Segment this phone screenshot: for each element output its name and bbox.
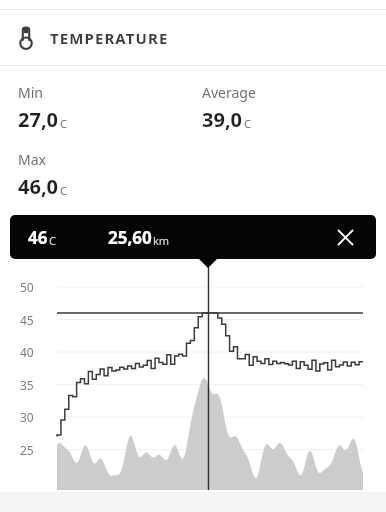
button[interactable]: Close <box>332 224 358 250</box>
staticText: 39,0 <box>202 106 243 133</box>
staticText: km <box>153 233 170 248</box>
button[interactable]: TEMPERATURE <box>0 10 386 65</box>
staticText: 25,60 <box>108 226 152 249</box>
staticText: Max <box>18 150 46 169</box>
staticText: 35 <box>20 377 34 393</box>
staticText: Average <box>202 83 256 102</box>
staticText: 50 <box>20 279 34 295</box>
staticText: 27,0 <box>18 106 59 133</box>
button[interactable]: Max <box>18 150 202 200</box>
staticText: 40 <box>20 344 34 360</box>
staticText: 25 <box>20 442 34 458</box>
button[interactable]: 46 <box>10 215 376 259</box>
staticText: 46 <box>28 226 48 249</box>
staticText: C <box>60 183 67 198</box>
button[interactable]: Min <box>18 83 202 133</box>
staticText: Min <box>18 83 43 102</box>
staticText: TEMPERATURE <box>50 28 169 48</box>
staticText: 45 <box>20 312 34 328</box>
button[interactable]: Average <box>202 83 386 133</box>
staticText: 30 <box>20 409 34 425</box>
staticText: C <box>49 233 56 248</box>
staticText: 46,0 <box>18 173 59 200</box>
staticText: C <box>60 116 67 131</box>
staticText: C <box>244 116 251 131</box>
button[interactable]: 50 <box>0 267 386 492</box>
